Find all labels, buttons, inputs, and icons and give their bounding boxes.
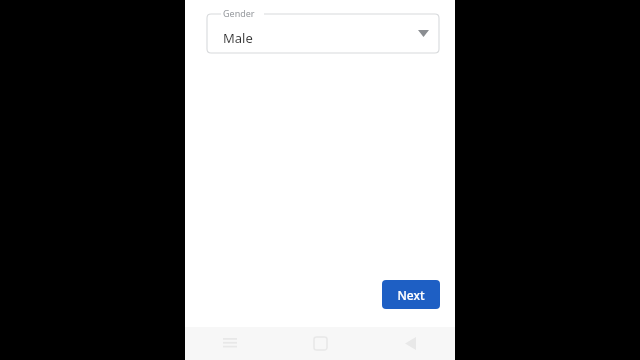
- button[interactable]: Next: [382, 280, 440, 309]
- button[interactable]: Gender dropdown: [207, 5, 439, 53]
- staticText: Gender: [223, 7, 255, 19]
- staticText: Male: [223, 29, 253, 47]
- staticText: Next: [397, 287, 425, 303]
